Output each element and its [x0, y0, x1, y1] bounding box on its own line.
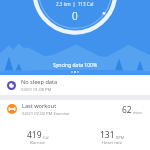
button[interactable]: 131 [75, 129, 150, 150]
staticText: BPM [116, 135, 125, 140]
button[interactable]: Last workout [0, 100, 150, 119]
staticText: 131 [100, 129, 115, 141]
staticText: Heart rate [102, 140, 123, 146]
staticText: 03/01 01:08 PM [21, 87, 52, 93]
button[interactable]: 419 [0, 129, 75, 150]
staticText: 02/21 07:02 PM Exercise [22, 111, 70, 117]
staticText: mins [133, 110, 142, 115]
staticText: Last workout [22, 102, 57, 110]
staticText: 2.3 km | 113 Cal [56, 1, 94, 7]
staticText: Syncing data 100% [53, 62, 98, 69]
button[interactable]: No sleep data [0, 75, 150, 95]
staticText: 419 [27, 129, 42, 141]
staticText: 62 [122, 104, 132, 116]
staticText: Burned [30, 140, 45, 146]
staticText: No sleep data [21, 78, 58, 86]
staticText: Cal [43, 135, 49, 140]
staticText: 0 [72, 9, 78, 23]
